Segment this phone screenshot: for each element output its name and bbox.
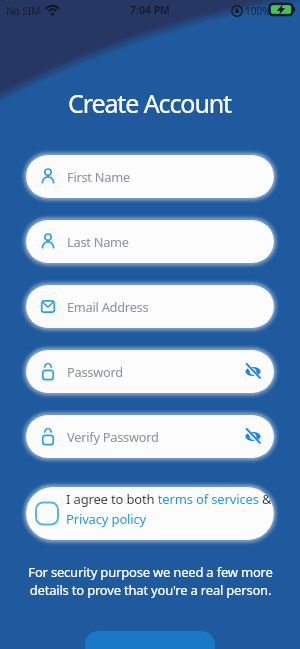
staticText: Verify Password — [67, 428, 159, 445]
staticText: First Name — [67, 168, 130, 185]
staticText: Email Address — [67, 298, 149, 315]
staticText: 100% — [245, 4, 271, 18]
staticText: For security purpose we need a few more … — [28, 563, 273, 599]
staticText: I agree to both terms of services & Priv… — [66, 490, 272, 528]
staticText: Last Name — [67, 233, 129, 250]
staticText: Create Account — [68, 86, 232, 120]
staticText: Password — [67, 363, 123, 380]
staticText: No SIM — [6, 4, 41, 18]
staticText: 7:04 PM — [130, 3, 170, 17]
